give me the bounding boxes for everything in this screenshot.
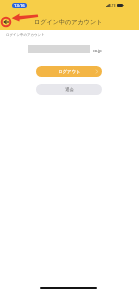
staticText: ログイン中のアカウント [6, 33, 45, 37]
staticText: ログアウト [58, 69, 81, 75]
button[interactable]: ログアウト [36, 66, 102, 77]
staticText: co.jp [93, 48, 102, 53]
staticText: ログイン中のアカウント [34, 18, 103, 26]
staticText: 13:16 [14, 3, 25, 8]
staticText: 退会 [65, 87, 74, 93]
button[interactable]: 退会 [36, 84, 102, 95]
staticText: LTE [110, 3, 116, 8]
button[interactable]: Back [1, 17, 11, 27]
